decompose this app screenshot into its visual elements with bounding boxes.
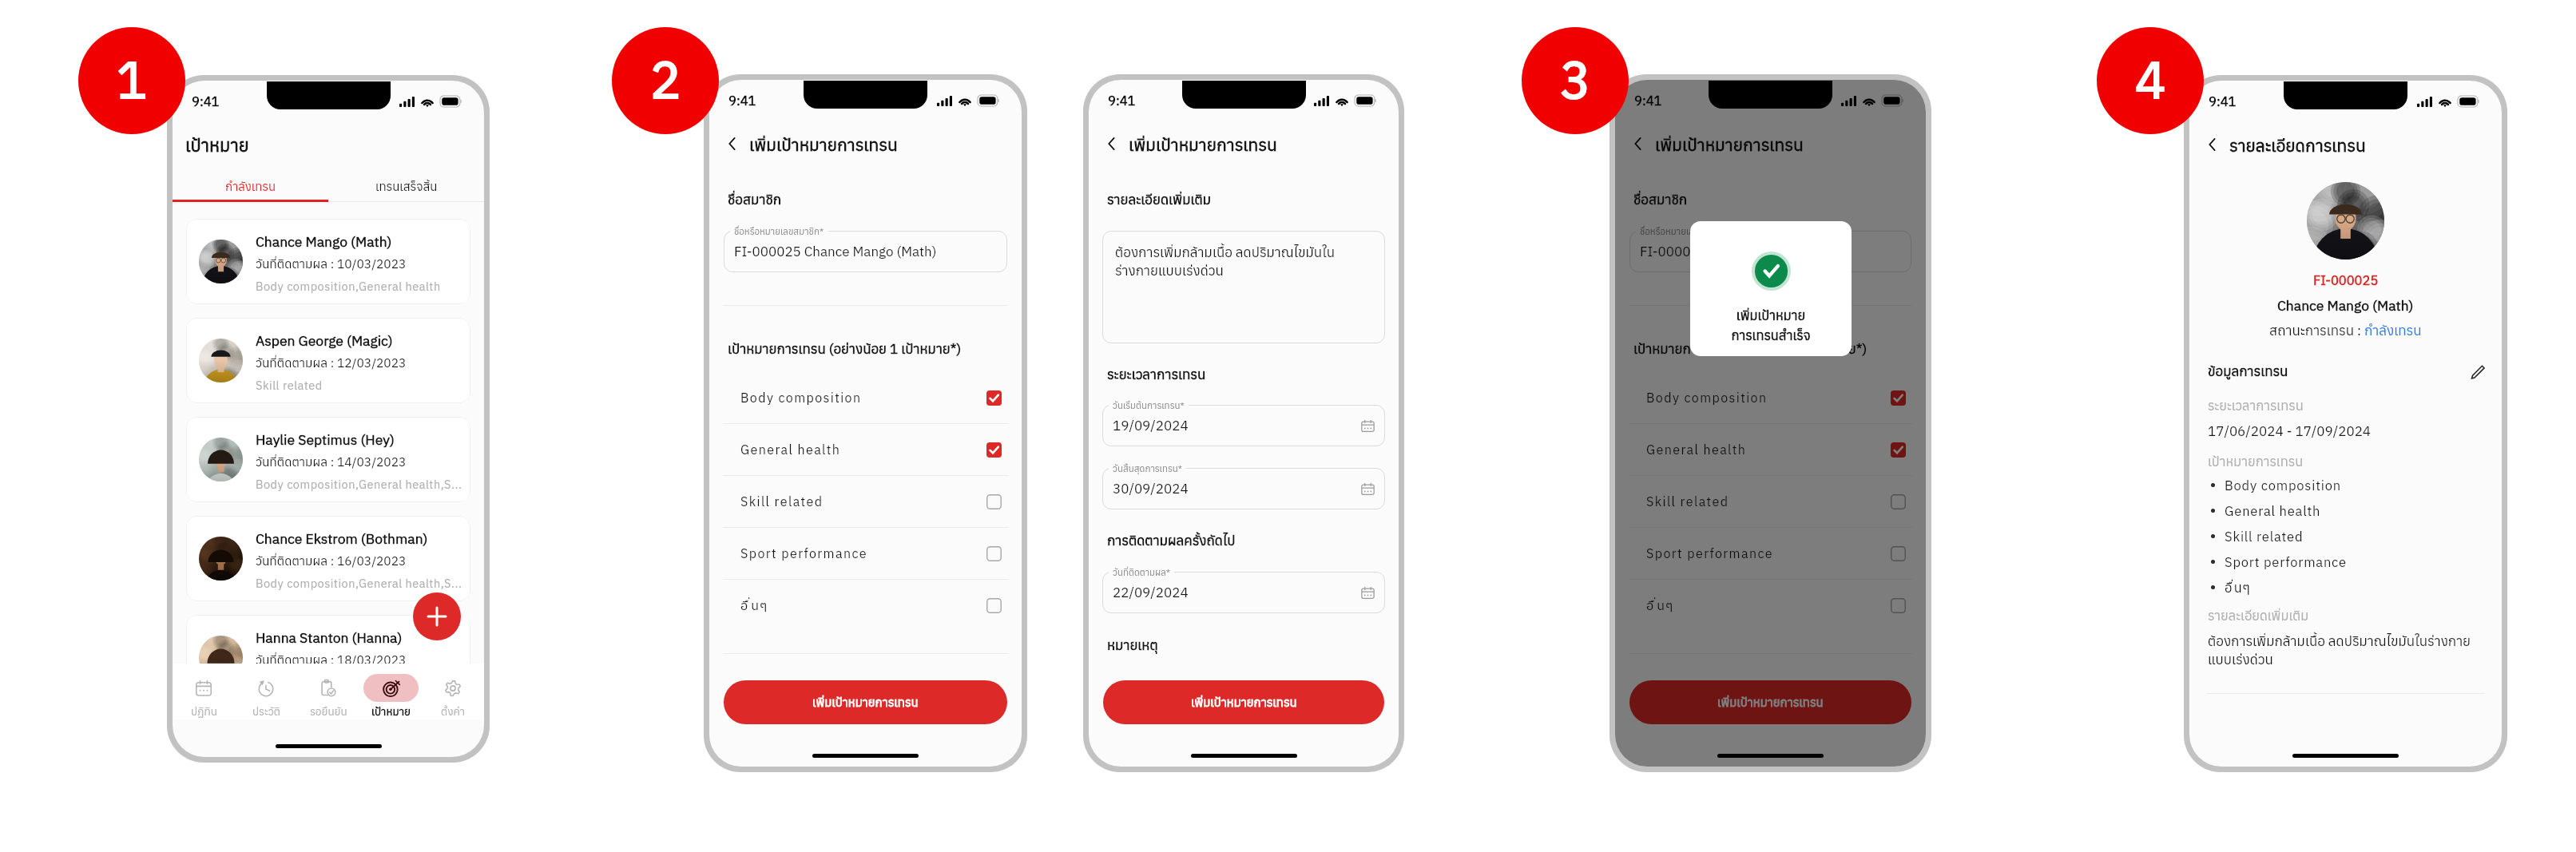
button[interactable]: เพิ่มเป้าหมายการเทรน — [724, 680, 1007, 724]
button[interactable] — [1102, 572, 1385, 613]
button[interactable]: Add goal — [413, 592, 461, 640]
staticText: เพิ่มเป้าหมายการเทรน — [1717, 695, 1824, 711]
staticText: 12/03/2023 — [337, 355, 407, 371]
staticText: ระยะเวลาการเทรน — [1107, 366, 1206, 383]
button[interactable] — [1102, 405, 1385, 446]
staticText: FI-000025 Chance Mango (Math) — [1640, 243, 1843, 260]
staticText: เพิ่มเป้าหมายการเทรน — [1191, 695, 1297, 711]
staticText: ชื่อสมาชิก — [728, 191, 782, 208]
staticText: Skill related — [1646, 493, 1729, 510]
staticText: 10/03/2023 — [337, 256, 407, 271]
staticText: เพิ่มเป้าหมายการเทรน — [812, 695, 919, 711]
button[interactable]: ประวัติ — [235, 664, 297, 719]
staticText: 18/03/2023 — [337, 652, 407, 668]
staticText: 9:41 — [728, 92, 756, 109]
button[interactable]: Skill related — [709, 476, 1022, 527]
button[interactable]: Back — [722, 134, 741, 153]
button[interactable]: Back — [1101, 134, 1121, 153]
staticText: FI-000025 — [2313, 271, 2379, 288]
staticText: FI-000025 Chance Mango (Math) — [734, 243, 937, 260]
staticText: 9:41 — [1108, 92, 1136, 109]
button[interactable]: เป้าหมาย — [359, 664, 422, 719]
staticText: Body composition — [256, 675, 355, 690]
button[interactable]: Chance Mango (Math) — [186, 219, 470, 304]
staticText: วันสิ้นสุดการเทรน* — [1113, 462, 1182, 474]
button[interactable]: เพิ่มเป้าหมายการเทรน — [1103, 680, 1384, 724]
staticText: 1 — [117, 46, 148, 112]
button[interactable]: Body composition — [709, 372, 1022, 423]
staticText: 3 — [1560, 46, 1591, 112]
staticText: Body composition — [2225, 477, 2341, 493]
button[interactable]: General health — [709, 424, 1022, 475]
button[interactable]: ปฏิทิน — [173, 664, 235, 719]
button[interactable]: Back — [1628, 134, 1647, 153]
staticText: General health — [1646, 442, 1747, 458]
button[interactable]: Body composition — [1615, 372, 1926, 423]
button[interactable]: Chance Ekstrom (Bothman) — [186, 516, 470, 601]
staticText: กำลังเทรน — [2364, 322, 2422, 339]
staticText: ชื่อหรือหมายเลขสมาชิก* — [734, 225, 824, 237]
staticText: Hanna Stanton (Hanna) — [256, 628, 403, 647]
button[interactable]: รอยืนยัน — [297, 664, 359, 719]
staticText: เพิ่มเป้าหมายการเทรน — [1655, 133, 1804, 155]
staticText: รอยืนยัน — [310, 704, 347, 719]
staticText: วันเริ่มต้นการเทรน* — [1113, 399, 1185, 411]
staticText: กำลังเทรน — [225, 179, 276, 195]
staticText: วันที่ติดตามผล : — [256, 256, 337, 271]
staticText: วันที่ติดตามผล : — [256, 553, 337, 569]
staticText: 16/03/2023 — [337, 553, 407, 569]
staticText: 17/06/2024 - 17/09/2024 — [2208, 422, 2372, 440]
button[interactable]: Back — [2202, 135, 2221, 154]
button[interactable]: Hanna Stanton (Hanna) — [186, 615, 470, 700]
staticText: เป้าหมายการเทรน (อย่างน้อย 1 เป้าหมาย*) — [728, 340, 962, 358]
staticText: เป้าหมาย — [371, 704, 411, 719]
staticText: เพิ่มเป้าหมายการเทรน — [1129, 133, 1277, 155]
staticText: 2 — [650, 46, 681, 112]
button[interactable] — [724, 231, 1007, 272]
staticText: สถานะการเทรน : — [2269, 322, 2364, 339]
staticText: Haylie Septimus (Hey) — [256, 430, 395, 449]
button[interactable]: กำลังเทรน — [173, 172, 328, 202]
staticText: ข้อมูลการเทรน — [2208, 363, 2288, 380]
button[interactable]: อื่นๆ — [709, 580, 1022, 631]
staticText: อื่นๆ — [740, 597, 768, 614]
button[interactable] — [1102, 468, 1385, 509]
staticText: 4 — [2135, 46, 2166, 112]
staticText: เป้าหมายการเทรน — [2208, 453, 2304, 470]
button[interactable]: Skill related — [1615, 476, 1926, 527]
staticText: รายละเอียดการเทรน — [2229, 134, 2366, 156]
staticText: เป้าหมายการเทรน (อย่างน้อย 1 เป้าหมาย*) — [1633, 340, 1868, 358]
button[interactable]: Sport performance — [1615, 528, 1926, 579]
button[interactable]: เทรนเสร็จสิ้น — [328, 172, 484, 202]
staticText: อื่นๆ — [2225, 579, 2251, 596]
button[interactable]: อื่นๆ — [1615, 580, 1926, 631]
button[interactable]: ตั้งค่า — [422, 664, 484, 719]
staticText: Body composition,General health — [256, 279, 441, 294]
button[interactable]: Aspen George (Magic) — [186, 318, 470, 403]
staticText: Skill related — [256, 378, 323, 393]
staticText: 19/09/2024 — [1113, 417, 1189, 434]
staticText: 9:41 — [192, 93, 220, 109]
button[interactable] — [1629, 231, 1911, 272]
staticText: เป้าหมาย — [185, 133, 249, 157]
staticText: รายละเอียดเพิ่มเติม — [1107, 191, 1212, 208]
staticText: การติดตามผลครั้งถัดไป — [1107, 532, 1236, 549]
button[interactable]: Edit — [2471, 364, 2486, 379]
button[interactable]: Sport performance — [709, 528, 1022, 579]
staticText: Body composition — [740, 390, 862, 406]
staticText: 14/03/2023 — [337, 454, 407, 470]
staticText: 22/09/2024 — [1113, 584, 1189, 601]
button[interactable]: เพิ่มเป้าหมายการเทรน — [1629, 680, 1911, 724]
staticText: ปฏิทิน — [191, 704, 217, 719]
staticText: เพิ่มเป้าหมายการเทรน — [749, 133, 898, 155]
staticText: Body composition,General health,S... — [256, 477, 462, 492]
button[interactable]: ต้องการเพิ่มกล้ามเนื้อ ลดปริมาณไขมันในร่… — [1102, 231, 1385, 343]
staticText: Sport performance — [1646, 545, 1773, 562]
staticText: Aspen George (Magic) — [256, 331, 393, 350]
button[interactable]: General health — [1615, 424, 1926, 475]
button[interactable]: Haylie Septimus (Hey) — [186, 417, 470, 502]
staticText: 9:41 — [1634, 92, 1662, 109]
staticText: ประวัติ — [252, 704, 280, 719]
staticText: วันที่ติดตามผล : — [256, 652, 337, 668]
staticText: เพิ่มเป้าหมาย การเทรนสำเร็จ — [1690, 307, 1852, 343]
